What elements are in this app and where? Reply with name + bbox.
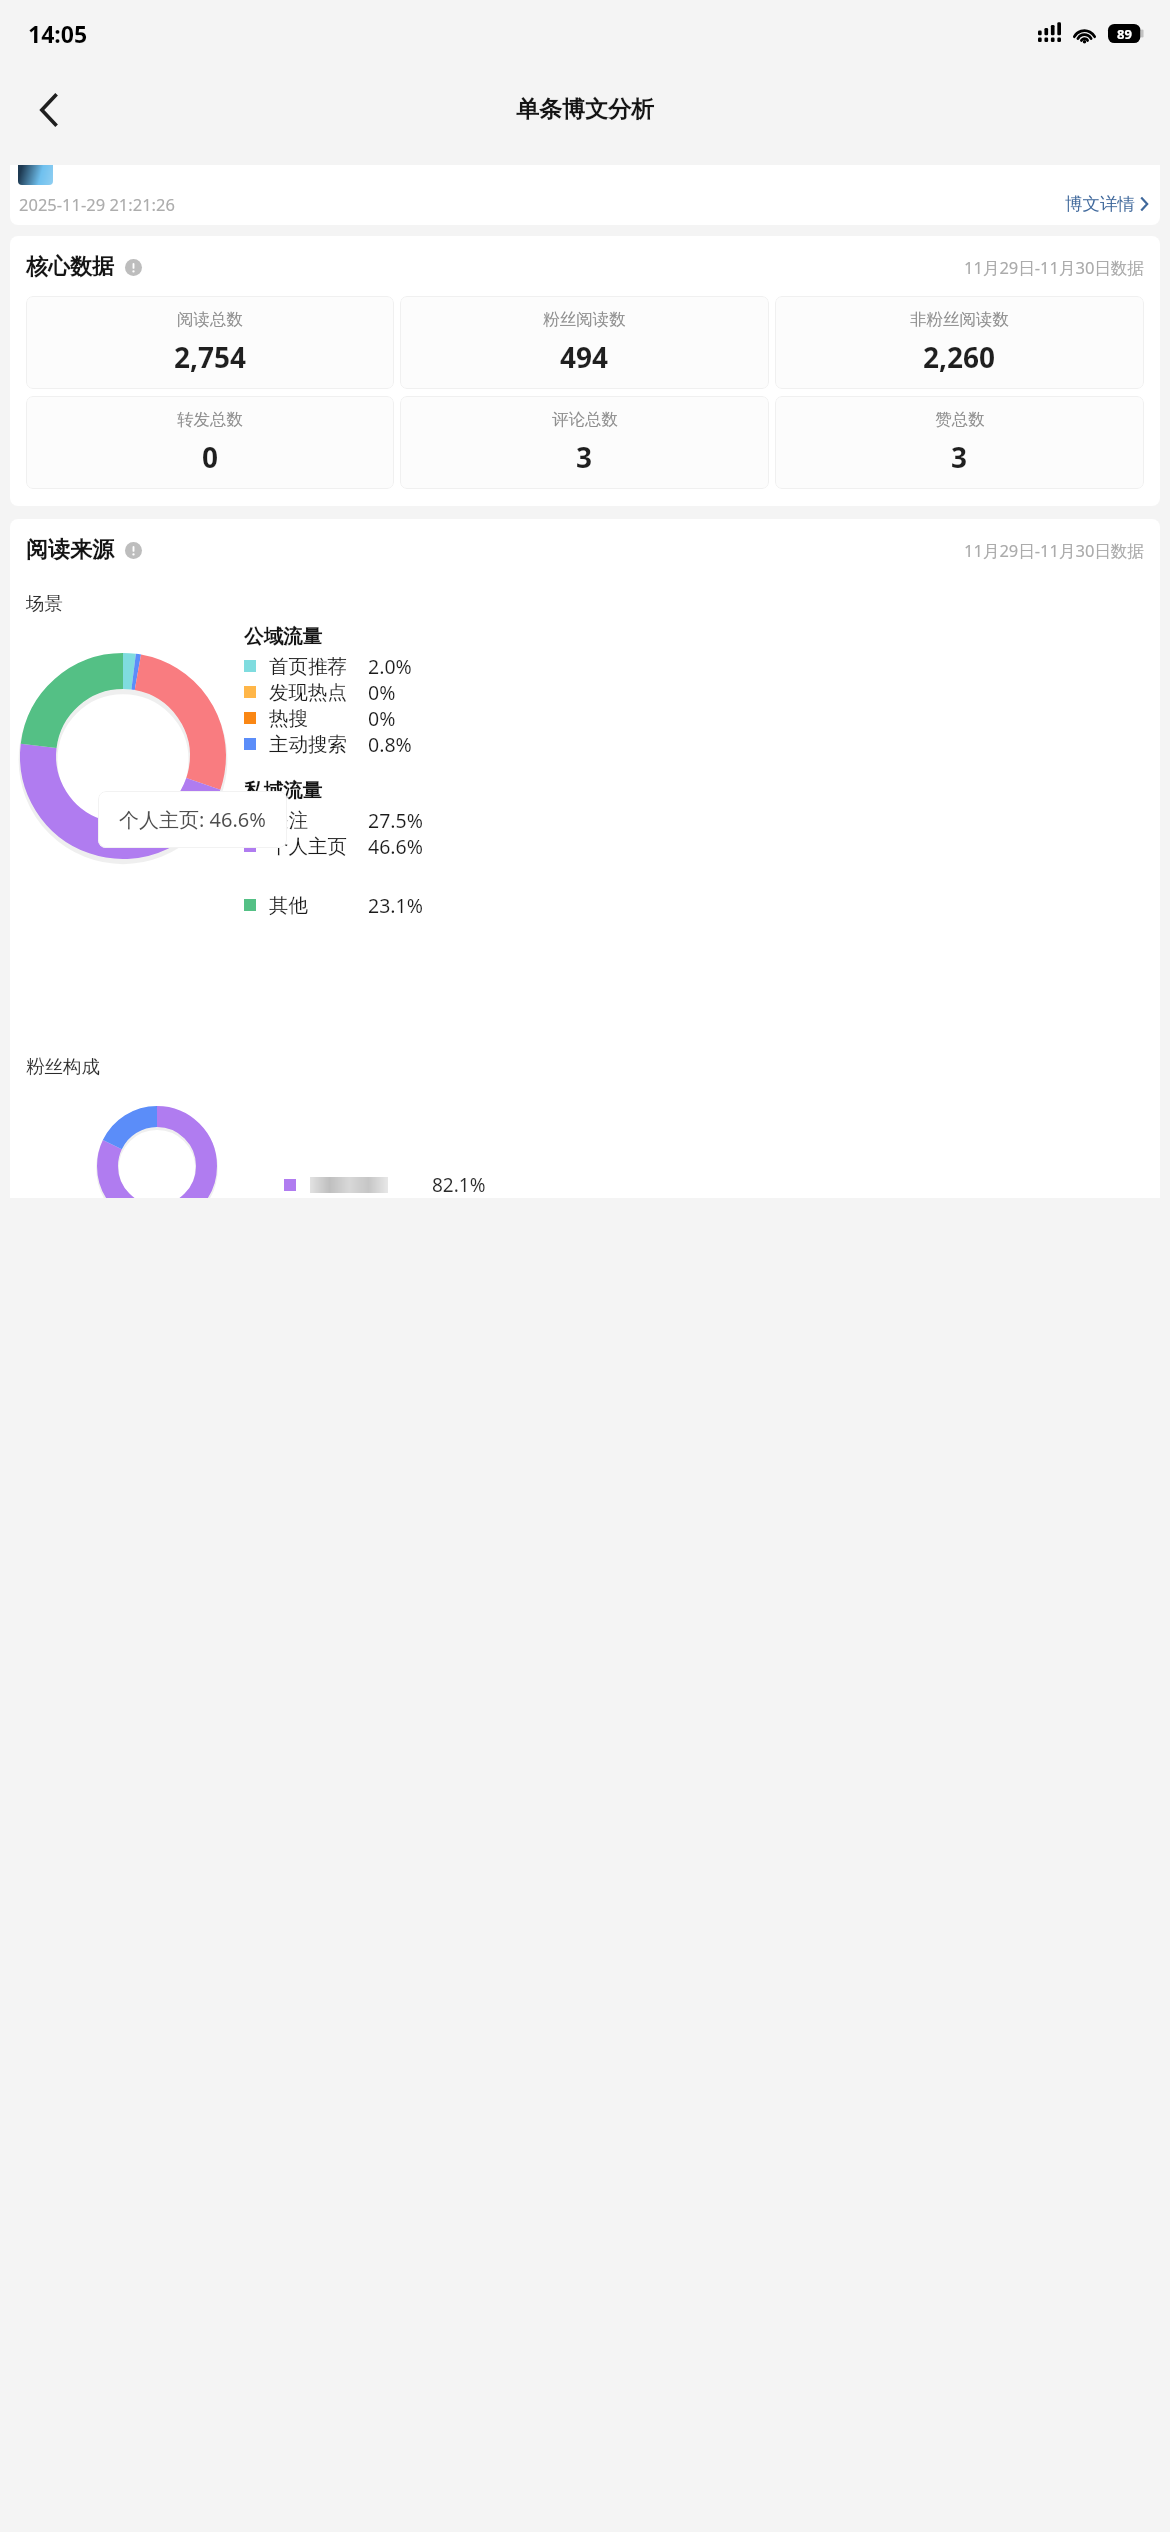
staticText: 其他 — [269, 893, 308, 918]
staticText: 23.1% — [368, 892, 423, 918]
staticText: 热搜 — [269, 706, 308, 731]
staticText: 粉丝构成 — [26, 1055, 100, 1078]
staticText: 82.1% — [432, 1172, 486, 1198]
button[interactable]: 非粉丝阅读数 — [775, 296, 1144, 389]
staticText: 关注 — [269, 808, 308, 833]
button[interactable]: 首页推荐 — [244, 653, 434, 679]
button[interactable]: Info — [121, 538, 145, 562]
staticText: 494 — [560, 338, 609, 376]
staticText: 首页推荐 — [269, 654, 347, 679]
staticText: 评论总数 — [552, 409, 618, 430]
button[interactable]: 阅读总数 — [26, 296, 394, 389]
staticText: 2.0% — [368, 653, 412, 679]
button[interactable]: 粉丝阅读数 — [400, 296, 769, 389]
staticText: 非粉丝阅读数 — [910, 309, 1009, 330]
button[interactable]: 转发总数 — [26, 396, 394, 489]
staticText: 粉丝阅读数 — [543, 309, 626, 330]
button[interactable]: 博文详情 — [1065, 193, 1148, 215]
staticText: 2,754 — [174, 338, 247, 376]
staticText: 转发总数 — [177, 409, 243, 430]
staticText: 主动搜索 — [269, 732, 347, 757]
button[interactable]: 个人主页 — [244, 833, 434, 859]
staticText: 0% — [368, 705, 396, 731]
staticText: 2025-11-29 21:21:26 — [19, 193, 175, 215]
staticText: 27.5% — [368, 807, 423, 833]
button[interactable]: 2025-11-29 21:21:26 — [10, 165, 1160, 225]
staticText: 个人主页 — [269, 834, 347, 859]
staticText: 个人主页: 46.6% — [119, 806, 266, 833]
staticText: 3 — [576, 438, 593, 476]
staticText: 核心数据 — [26, 253, 114, 281]
staticText: 阅读总数 — [177, 309, 243, 330]
button[interactable]: 发现热点 — [244, 679, 434, 705]
staticText: 赞总数 — [935, 409, 985, 430]
button[interactable]: Info — [121, 255, 145, 279]
staticText: 阅读来源 — [26, 536, 114, 564]
button[interactable]: Back — [20, 81, 78, 139]
staticText: 0 — [202, 438, 219, 476]
button[interactable]: 热搜 — [244, 705, 434, 731]
button[interactable]: 赞总数 — [775, 396, 1144, 489]
staticText: 46.6% — [368, 833, 423, 859]
staticText: 2,260 — [923, 338, 996, 376]
staticText: 场景 — [26, 592, 63, 615]
staticText: 博文详情 — [1065, 193, 1135, 215]
staticText: 公域流量 — [244, 624, 322, 649]
button[interactable]: 主动搜索 — [244, 731, 434, 757]
staticText: 私域流量 — [244, 778, 322, 803]
staticText: 89 — [1117, 25, 1132, 43]
staticText: 14:05 — [28, 18, 88, 49]
button[interactable]: 关注 — [244, 807, 434, 833]
staticText: 单条博文分析 — [516, 95, 654, 124]
staticText: 11月29日-11月30日数据 — [964, 539, 1144, 562]
button[interactable]: 评论总数 — [400, 396, 769, 489]
staticText: 11月29日-11月30日数据 — [964, 256, 1144, 279]
button[interactable]: 其他 — [244, 892, 434, 918]
staticText: 发现热点 — [269, 680, 347, 705]
staticText: 0.8% — [368, 731, 412, 757]
staticText: 0% — [368, 679, 396, 705]
staticText: 3 — [951, 438, 968, 476]
